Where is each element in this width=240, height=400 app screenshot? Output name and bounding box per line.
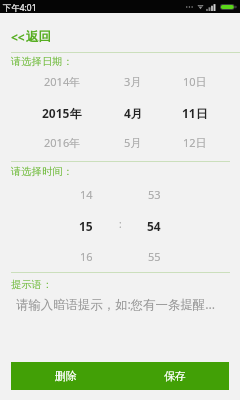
- staticText: 2016年: [44, 135, 81, 150]
- staticText: 2015年: [42, 105, 82, 121]
- staticText: 2014年: [44, 74, 81, 89]
- button[interactable]: 16: [64, 241, 108, 271]
- button[interactable]: 4月: [107, 97, 159, 128]
- staticText: 下午4:01: [3, 2, 37, 13]
- staticText: 14: [80, 187, 93, 202]
- staticText: 53: [148, 187, 161, 202]
- staticText: 3月: [124, 74, 142, 89]
- button[interactable]: 5月: [107, 128, 159, 157]
- other: Mobile signal: [206, 3, 215, 11]
- button[interactable]: 删除: [11, 362, 120, 390]
- button[interactable]: 10日: [169, 66, 221, 97]
- other: More notifications: [186, 5, 194, 9]
- button[interactable]: 2016年: [30, 128, 94, 157]
- button[interactable]: 2014年: [30, 66, 94, 97]
- staticText: 10日: [183, 74, 207, 89]
- staticText: 保存: [164, 369, 186, 383]
- staticText: 请选择时间：: [11, 165, 73, 178]
- button[interactable]: 12日: [169, 128, 221, 157]
- staticText: 12日: [183, 135, 207, 150]
- button[interactable]: 14: [64, 179, 108, 210]
- staticText: 提示语：: [11, 278, 53, 291]
- other: Wi-Fi: [197, 3, 204, 10]
- staticText: 11日: [182, 105, 208, 121]
- staticText: :: [119, 217, 122, 231]
- button[interactable]: 55: [132, 241, 176, 271]
- staticText: 返回: [26, 29, 52, 45]
- staticText: 删除: [55, 369, 77, 383]
- button[interactable]: 15: [64, 210, 108, 241]
- staticText: 请输入暗语提示，如:您有一条提醒...: [16, 296, 216, 313]
- staticText: 16: [80, 249, 93, 264]
- staticText: 5月: [124, 135, 142, 150]
- button[interactable]: 保存: [120, 362, 229, 390]
- staticText: 55: [148, 249, 161, 264]
- button[interactable]: 3月: [107, 66, 159, 97]
- button[interactable]: 11日: [169, 97, 221, 128]
- button[interactable]: 53: [132, 179, 176, 210]
- staticText: <<: [11, 29, 25, 45]
- staticText: 请选择日期：: [11, 55, 73, 68]
- button[interactable]: 2015年: [30, 97, 94, 128]
- button[interactable]: 54: [132, 210, 176, 241]
- button[interactable]: <<: [0, 13, 240, 52]
- other: Battery: [220, 4, 237, 10]
- staticText: 54: [147, 218, 161, 234]
- staticText: 15: [79, 218, 93, 234]
- button[interactable]: 请输入暗语提示，如:您有一条提醒...: [0, 295, 240, 319]
- staticText: 4月: [124, 105, 143, 121]
